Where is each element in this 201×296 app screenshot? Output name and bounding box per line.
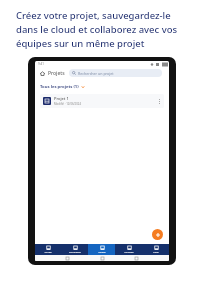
staticText: Documents [69, 251, 81, 254]
button[interactable]: Profil [142, 244, 169, 255]
staticText: Rechercher un projet [78, 71, 114, 76]
staticText: Partagés [124, 251, 134, 254]
staticText: Tous les projets (1) [40, 84, 79, 90]
staticText: Modifié · 12/06/2024 [54, 102, 82, 106]
staticText: Projets [48, 70, 65, 77]
button[interactable]: Rechercher un projet [69, 69, 162, 77]
button[interactable]: Home [100, 256, 105, 261]
button[interactable]: Recents [65, 256, 70, 261]
button[interactable]: Partagés [115, 244, 142, 255]
button[interactable]: Back [134, 256, 139, 261]
staticText: Projets [98, 251, 106, 254]
button[interactable]: Accueil [39, 70, 46, 77]
staticText: 9:41 [38, 62, 44, 66]
button[interactable]: Créer un projet [152, 229, 163, 240]
button[interactable]: Projets [88, 244, 115, 255]
staticText: Créez votre projet, sauvegardez-le [16, 9, 171, 22]
staticText: Profil [153, 251, 159, 254]
staticText: dans le cloud et collaborez avec vos [16, 23, 178, 36]
button[interactable]: Documents [61, 244, 88, 255]
staticText: Projet 1 [54, 96, 69, 101]
button[interactable]: Projet 1 [40, 94, 164, 108]
staticText: équipes sur un même projet [16, 37, 145, 50]
staticText: Accueil [44, 251, 52, 254]
button[interactable]: Accueil [35, 244, 61, 255]
